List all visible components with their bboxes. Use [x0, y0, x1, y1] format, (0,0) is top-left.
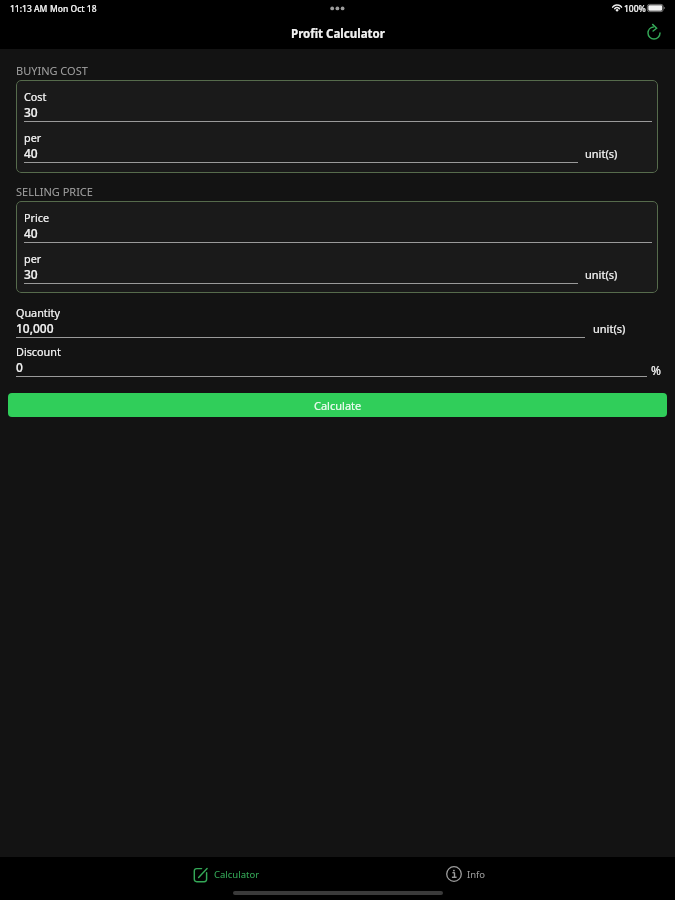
- staticText: Info: [467, 868, 486, 881]
- staticText: Calculator: [214, 868, 260, 881]
- staticText: Cost: [24, 89, 47, 104]
- button[interactable]: Quantity: [16, 305, 585, 339]
- staticText: unit(s): [593, 321, 626, 336]
- staticText: %: [651, 362, 661, 378]
- staticText: Calculate: [314, 398, 362, 413]
- button[interactable]: Calculate: [8, 393, 667, 417]
- staticText: 11:13 AM: [10, 3, 48, 15]
- staticText: Discount: [16, 344, 61, 359]
- staticText: per: [24, 251, 42, 266]
- staticText: unit(s): [585, 267, 618, 282]
- staticText: BUYING COST: [16, 63, 88, 78]
- staticText: Quantity: [16, 305, 60, 320]
- staticText: 0: [16, 359, 23, 375]
- button[interactable]: Discount: [16, 344, 647, 378]
- button[interactable]: Info: [443, 862, 490, 886]
- button[interactable]: Calculator: [189, 862, 264, 886]
- staticText: 40: [24, 145, 38, 161]
- button[interactable]: Cost: [24, 89, 652, 123]
- staticText: 100%: [624, 3, 646, 15]
- staticText: unit(s): [585, 146, 618, 161]
- staticText: Profit Calculator: [291, 26, 385, 42]
- button[interactable]: per: [24, 130, 578, 164]
- staticText: per: [24, 130, 42, 145]
- staticText: Price: [24, 210, 50, 225]
- button[interactable]: per: [24, 251, 578, 285]
- button[interactable]: Reset: [641, 20, 667, 46]
- staticText: Mon Oct 18: [50, 3, 97, 15]
- button[interactable]: Price: [24, 210, 652, 244]
- staticText: 30: [24, 266, 38, 282]
- staticText: 10,000: [16, 320, 54, 336]
- staticText: 40: [24, 225, 38, 241]
- staticText: 30: [24, 104, 38, 120]
- staticText: SELLING PRICE: [16, 184, 93, 199]
